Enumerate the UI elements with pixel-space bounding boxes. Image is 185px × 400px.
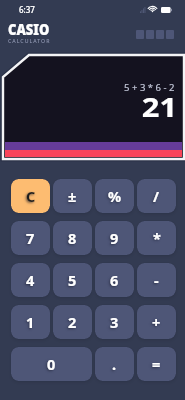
button[interactable]: 0	[11, 347, 92, 381]
button[interactable]: 1	[11, 305, 50, 339]
staticText: 9	[110, 228, 119, 248]
button[interactable]: +	[137, 305, 176, 339]
button[interactable]: 3	[95, 305, 134, 339]
staticText: 5	[68, 270, 77, 290]
staticText: %	[108, 186, 122, 206]
button[interactable]: *	[137, 221, 176, 255]
staticText: 2	[68, 312, 77, 332]
button[interactable]: %	[95, 179, 134, 213]
button[interactable]: 4	[11, 263, 50, 297]
staticText: .	[112, 354, 117, 374]
staticText: 6	[110, 270, 119, 290]
staticText: *	[153, 228, 161, 248]
button[interactable]: 8	[53, 221, 92, 255]
staticText: =	[152, 354, 161, 374]
button[interactable]: -	[137, 263, 176, 297]
staticText: 3	[110, 312, 119, 332]
staticText: 6:37	[19, 4, 35, 15]
staticText: /	[153, 186, 160, 206]
button[interactable]: /	[137, 179, 176, 213]
staticText: ±	[68, 186, 77, 206]
staticText: 8	[68, 228, 77, 248]
staticText: 1	[26, 312, 35, 332]
staticText: -	[154, 270, 159, 290]
button[interactable]: 2	[53, 305, 92, 339]
button[interactable]: C	[11, 179, 50, 213]
staticText: CALCULATOR	[8, 37, 51, 44]
button[interactable]: 9	[95, 221, 134, 255]
button[interactable]: =	[137, 347, 176, 381]
staticText: 21	[141, 88, 177, 125]
button[interactable]: 6	[95, 263, 134, 297]
staticText: 7	[26, 228, 35, 248]
staticText: +	[152, 312, 161, 332]
staticText: 5+3*6-2	[124, 81, 177, 94]
button[interactable]: 7	[11, 221, 50, 255]
staticText: CASIO	[8, 18, 50, 40]
button[interactable]: ±	[53, 179, 92, 213]
staticText: 4	[26, 270, 35, 290]
staticText: 0	[47, 354, 56, 374]
button[interactable]: 5	[53, 263, 92, 297]
staticText: C	[26, 186, 36, 206]
button[interactable]: .	[95, 347, 134, 381]
